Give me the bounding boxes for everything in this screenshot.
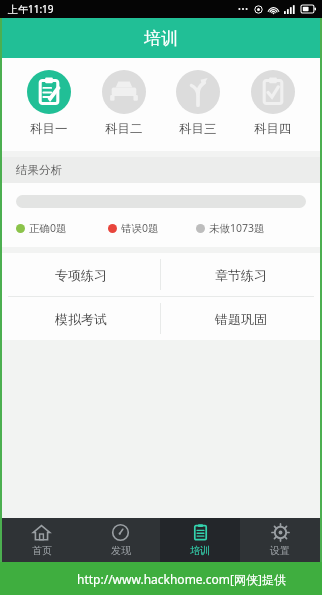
button[interactable]: 科目二 [96,70,152,137]
staticText: 正确0题 [29,221,67,235]
staticText: 未做1073题 [209,221,265,235]
button[interactable]: 培训 [160,518,240,562]
button[interactable]: 错题巩固 [161,297,320,340]
button[interactable]: 首页 [2,518,81,562]
staticText: 错误0题 [121,221,159,235]
button[interactable]: 章节练习 [161,253,320,296]
staticText: 培训 [190,544,210,557]
staticText: 模拟考试 [55,311,107,327]
button[interactable]: 科目三 [170,70,226,137]
staticText: 上午11:19 [8,2,54,16]
button[interactable]: 设置 [240,518,320,562]
button[interactable]: 发现 [81,518,160,562]
staticText: 专项练习 [55,267,107,283]
staticText: 科目一 [30,121,68,137]
staticText: 科目四 [254,121,292,137]
staticText: 培训 [144,28,178,49]
button[interactable]: 科目一 [21,70,77,137]
button[interactable]: 科目四 [245,70,301,137]
staticText: 科目三 [179,121,217,137]
button[interactable]: 模拟考试 [2,297,160,340]
staticText: 章节练习 [215,267,267,283]
staticText: 首页 [32,544,52,557]
staticText: 科目二 [105,121,143,137]
staticText: http://www.hackhome.com[网侠]提供 [77,571,286,587]
staticText: 设置 [270,544,290,557]
staticText: 发现 [111,544,131,557]
button[interactable]: 专项练习 [2,253,160,296]
staticText: 结果分析 [16,163,62,177]
staticText: 错题巩固 [215,311,267,327]
